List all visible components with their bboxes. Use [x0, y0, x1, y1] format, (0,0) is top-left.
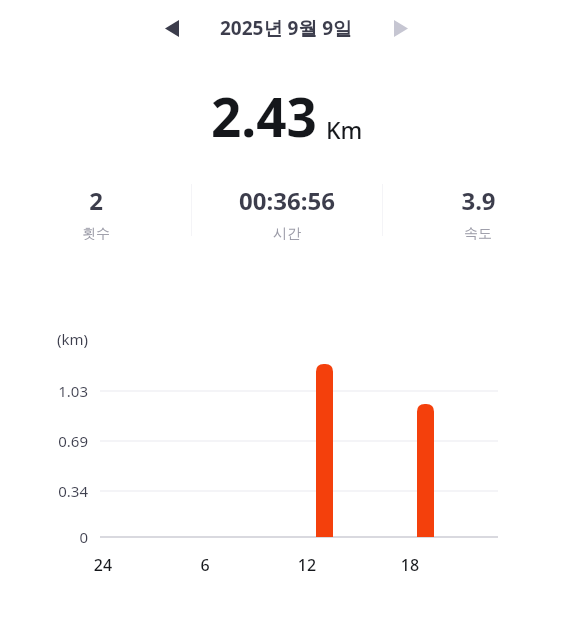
staticText: 00:36:56 [239, 184, 335, 217]
button[interactable]: 00:36:56 [192, 184, 382, 243]
staticText: 1.03 [0, 381, 88, 401]
staticText: 시간 [273, 225, 301, 243]
button[interactable]: 2 [0, 184, 191, 243]
staticText: 0 [0, 527, 88, 547]
staticText: (km) [0, 329, 88, 349]
staticText: 2 [89, 184, 103, 217]
staticText: 횟수 [82, 225, 110, 243]
staticText: 24 [73, 554, 133, 576]
staticText: 3.9 [461, 184, 496, 217]
staticText: 0.69 [0, 431, 88, 451]
staticText: 2025년 9월 9일 [220, 15, 353, 41]
staticText: 12 [277, 554, 337, 576]
staticText: 0.34 [0, 481, 88, 501]
staticText: Km [326, 114, 363, 145]
button[interactable]: Previous day [151, 10, 193, 46]
staticText: 2.43 [211, 80, 317, 152]
button[interactable]: 3.9 [383, 184, 573, 243]
button[interactable]: Next day [380, 10, 422, 46]
staticText: 6 [175, 554, 235, 576]
staticText: 속도 [464, 225, 492, 243]
staticText: 18 [380, 554, 440, 576]
